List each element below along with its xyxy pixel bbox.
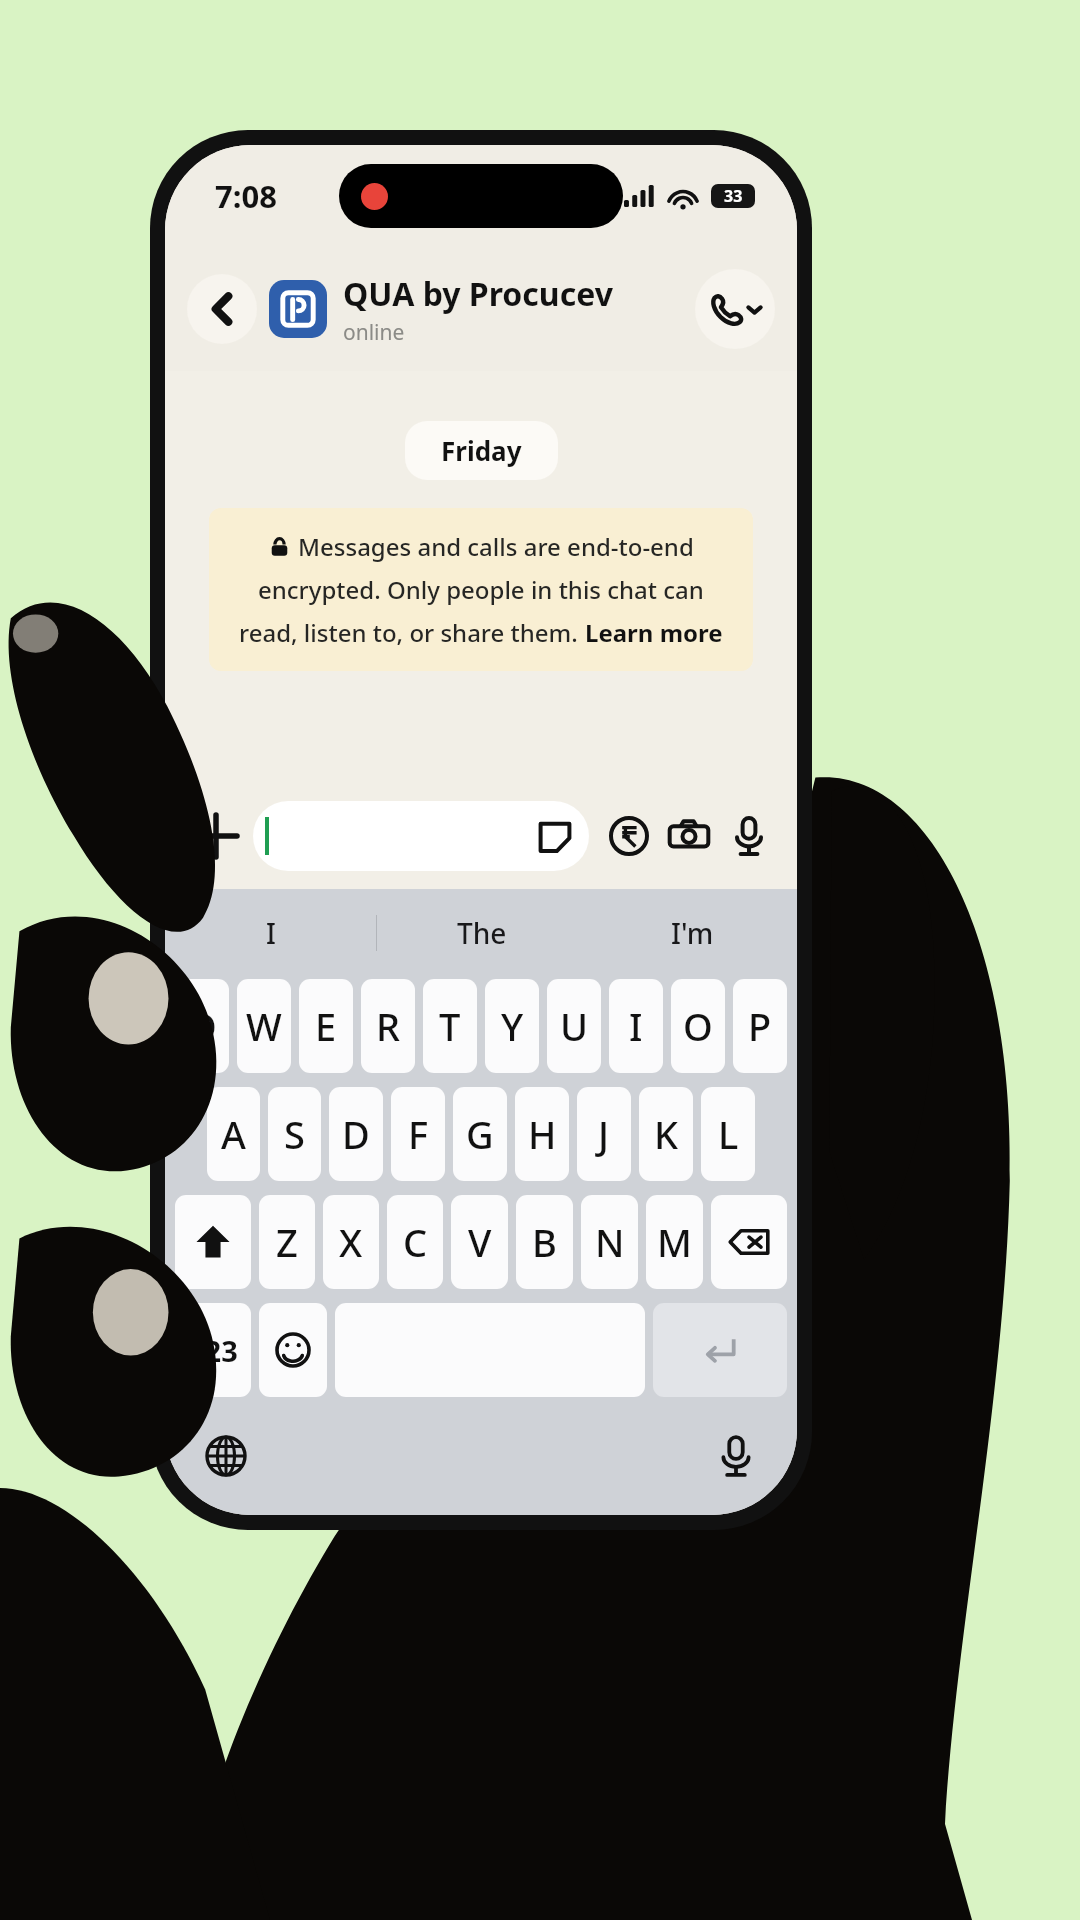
staticText: U — [560, 1000, 589, 1052]
button[interactable] — [253, 801, 589, 871]
button[interactable]: O — [671, 979, 725, 1073]
button[interactable]: F — [391, 1087, 445, 1181]
button[interactable]: N — [581, 1195, 638, 1289]
button[interactable]: Backspace — [711, 1195, 787, 1289]
staticText: L — [718, 1108, 739, 1160]
staticText: T — [439, 1000, 461, 1052]
staticText: read, listen to, or share them. — [239, 616, 585, 649]
staticText: J — [598, 1108, 610, 1160]
button[interactable]: I — [609, 979, 663, 1073]
staticText: G — [466, 1108, 494, 1160]
button[interactable]: B — [516, 1195, 573, 1289]
button[interactable]: R — [361, 979, 415, 1073]
staticText: Q — [187, 1000, 217, 1052]
button[interactable]: E — [299, 979, 353, 1073]
staticText: S — [284, 1108, 305, 1160]
button[interactable]: M — [646, 1195, 703, 1289]
button[interactable]: L — [701, 1087, 755, 1181]
button[interactable]: Emoji — [259, 1303, 327, 1397]
staticText: P — [748, 1000, 772, 1052]
staticText: F — [408, 1108, 429, 1160]
button[interactable]: Voice message — [721, 808, 777, 864]
staticText: The — [457, 914, 507, 952]
button[interactable]: D — [329, 1087, 383, 1181]
staticText: I'm — [671, 914, 714, 952]
button[interactable]: Camera — [661, 808, 717, 864]
staticText: Learn more — [585, 616, 723, 649]
button[interactable]: 123 — [175, 1303, 251, 1397]
button[interactable]: The — [377, 889, 587, 977]
staticText: 7:08 — [215, 175, 277, 217]
button[interactable]: V — [451, 1195, 508, 1289]
staticText: Messages and calls are end-to-end — [298, 530, 694, 563]
button[interactable]: Y — [485, 979, 539, 1073]
button[interactable]: T — [423, 979, 477, 1073]
staticText: V — [468, 1216, 492, 1268]
staticText: E — [315, 1000, 337, 1052]
staticText: M — [657, 1216, 692, 1268]
button[interactable]: Messages and calls are end-to-end — [209, 508, 753, 671]
button[interactable]: J — [577, 1087, 631, 1181]
button[interactable]: Change keyboard — [197, 1427, 255, 1485]
staticText: H — [528, 1108, 557, 1160]
staticText: I — [629, 1000, 643, 1052]
button[interactable]: P — [733, 979, 787, 1073]
button[interactable]: I — [165, 889, 376, 977]
staticText: Y — [501, 1000, 524, 1052]
staticText: K — [654, 1108, 679, 1160]
staticText: W — [246, 1000, 282, 1052]
staticText: 33 — [724, 185, 743, 207]
button[interactable]: Shift — [175, 1195, 251, 1289]
button[interactable]: Attach — [185, 805, 247, 867]
button[interactable]: Return — [653, 1303, 787, 1397]
button[interactable]: H — [515, 1087, 569, 1181]
button[interactable]: K — [639, 1087, 693, 1181]
staticText: O — [683, 1000, 713, 1052]
staticText: X — [339, 1216, 363, 1268]
staticText: D — [342, 1108, 370, 1160]
button[interactable]: Friday — [405, 421, 558, 480]
button[interactable]: I'm — [587, 889, 797, 977]
staticText: A — [221, 1108, 246, 1160]
button[interactable]: Back — [187, 274, 257, 344]
button[interactable]: X — [323, 1195, 379, 1289]
staticText: I — [266, 914, 276, 952]
button[interactable]: A — [207, 1087, 260, 1181]
button[interactable]: Payments — [601, 808, 657, 864]
button[interactable]: G — [453, 1087, 507, 1181]
staticText: R — [376, 1000, 401, 1052]
button[interactable]: Z — [259, 1195, 315, 1289]
staticText: QUA by Procucev — [343, 272, 613, 316]
staticText: Z — [276, 1216, 298, 1268]
button[interactable]: C — [387, 1195, 443, 1289]
staticText: C — [403, 1216, 428, 1268]
button[interactable]: S — [268, 1087, 321, 1181]
staticText: 123 — [188, 1331, 238, 1370]
button[interactable]: Q — [175, 979, 229, 1073]
staticText: encrypted. Only people in this chat can — [258, 573, 704, 606]
staticText: Friday — [441, 433, 522, 468]
staticText: B — [532, 1216, 557, 1268]
button[interactable]: Call — [695, 269, 775, 349]
staticText: online — [343, 318, 405, 347]
button[interactable]: QUA by Procucev — [343, 272, 695, 347]
staticText: N — [595, 1216, 625, 1268]
button[interactable]: W — [237, 979, 291, 1073]
button[interactable]: Dictate — [707, 1427, 765, 1485]
button[interactable]: U — [547, 979, 601, 1073]
